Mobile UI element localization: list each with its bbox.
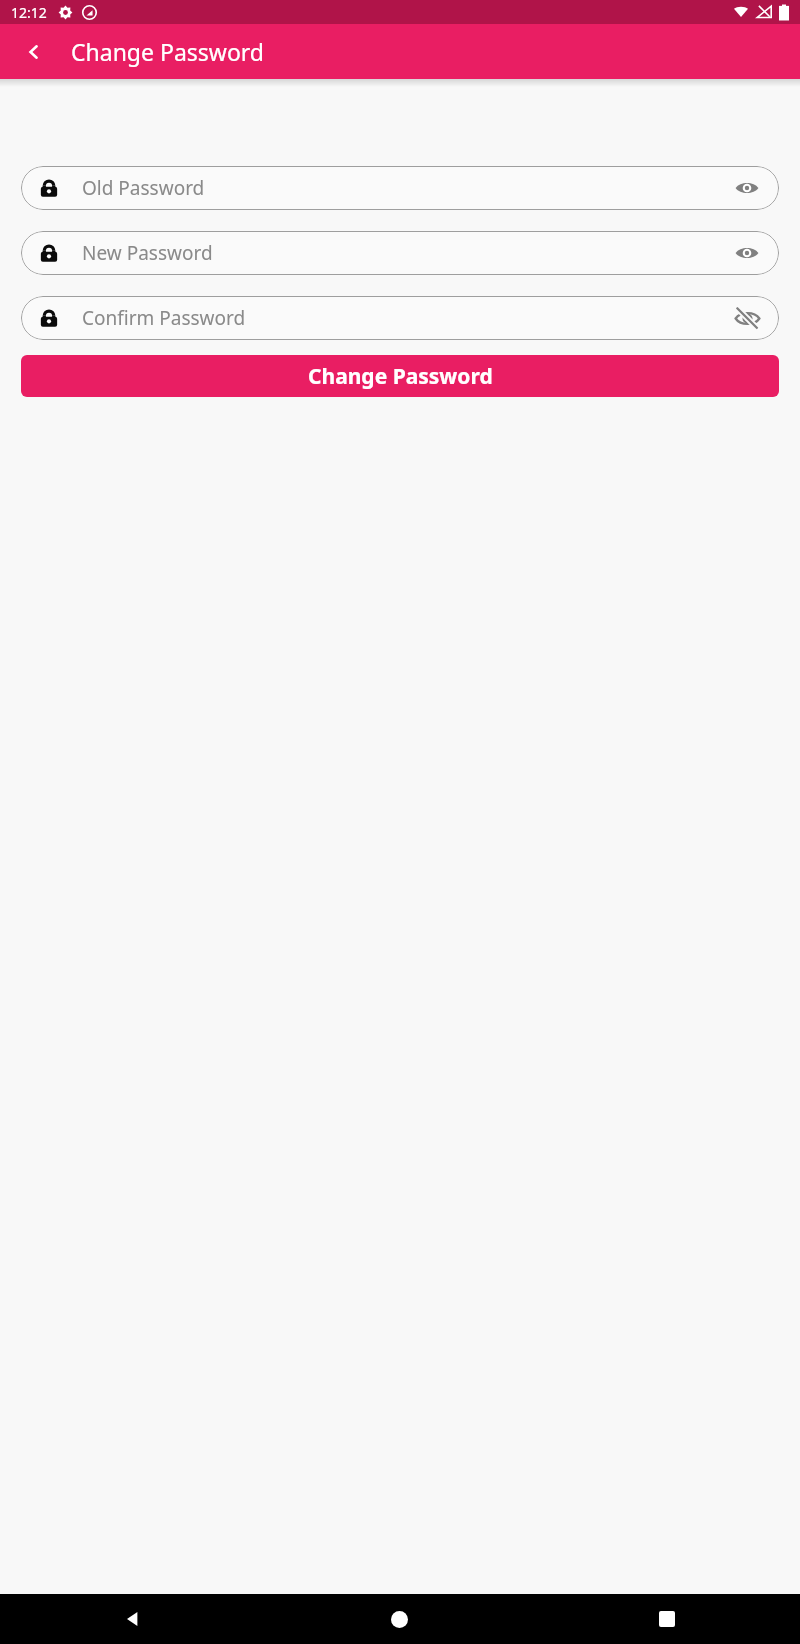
button[interactable]: Back [12,30,56,74]
button[interactable]: Show password [732,173,762,203]
button[interactable]: Home [266,1611,533,1628]
staticText: New Password [82,240,732,266]
button[interactable]: New Password [21,231,779,275]
staticText: Confirm Password [82,305,732,331]
staticText: 12:12 [11,3,47,22]
button[interactable]: Change Password [21,355,779,397]
staticText: Old Password [82,175,732,201]
staticText: Change Password [308,362,493,391]
button[interactable]: Confirm Password [21,296,779,340]
staticText: Change Password [71,36,264,67]
button[interactable]: Old Password [21,166,779,210]
button[interactable]: Hide password [732,303,762,333]
button[interactable]: Back [0,1609,266,1629]
button[interactable]: Recent apps [533,1611,800,1627]
button[interactable]: Show password [732,238,762,268]
